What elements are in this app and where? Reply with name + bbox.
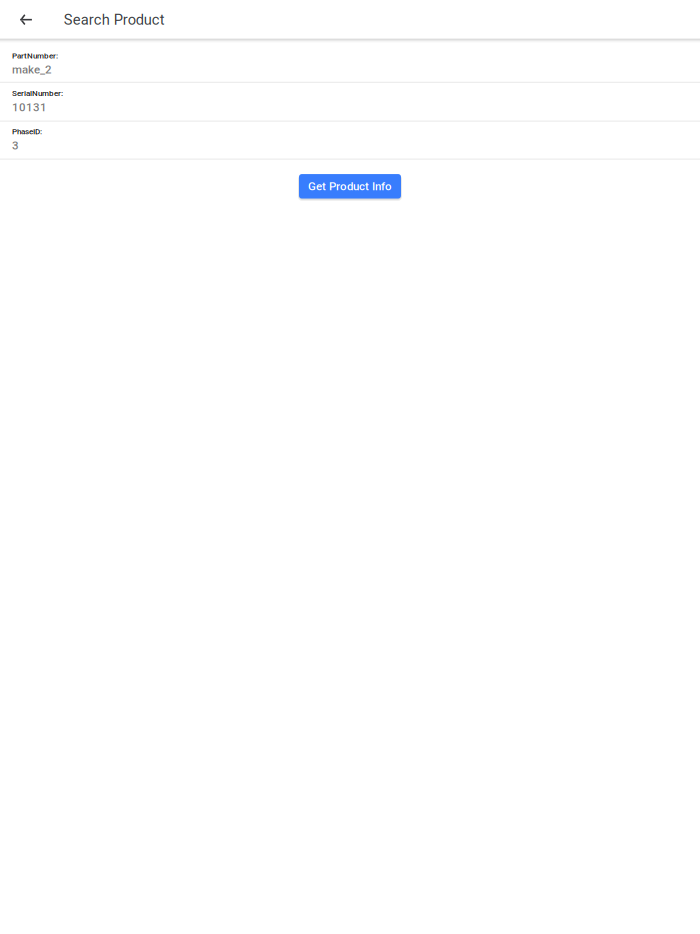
staticText: PhaseID: — [12, 127, 42, 136]
staticText: SerialNumber: — [12, 88, 63, 98]
staticText: Get Product Info — [308, 180, 392, 193]
staticText: 10131 — [12, 101, 47, 114]
staticText: make_2 — [12, 63, 52, 76]
staticText: Search Product — [64, 11, 165, 28]
staticText: 3 — [12, 139, 19, 152]
button[interactable]: Get Product Info — [295, 171, 405, 201]
staticText: PartNumber: — [12, 51, 58, 60]
button[interactable]: Back — [0, 0, 40, 38]
